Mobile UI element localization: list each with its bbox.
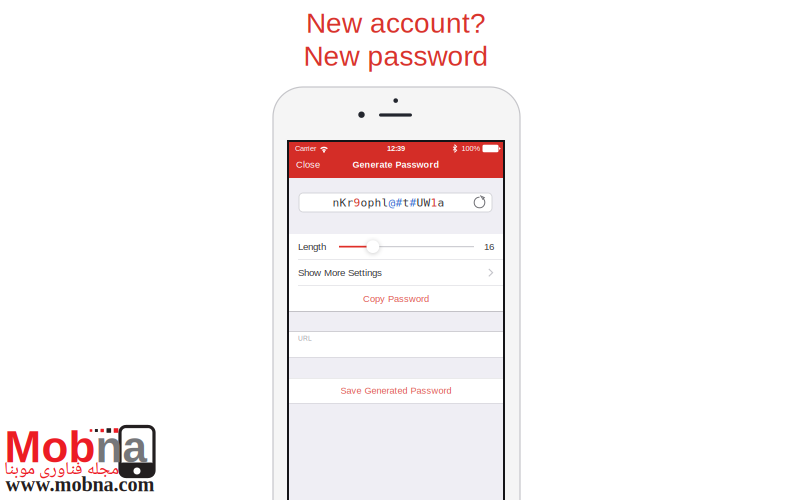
staticText: Show More Settings [298, 267, 382, 278]
staticText: مجله فناوری موبنا [3, 455, 118, 485]
staticText: Save Generated Password [340, 385, 451, 396]
staticText: New account? [306, 7, 486, 39]
staticText: www.mobna.com [5, 473, 154, 496]
button[interactable]: Close [289, 155, 327, 177]
staticText: ophl [360, 196, 388, 209]
button[interactable]: Copy Password [289, 286, 503, 311]
staticText: 9 [353, 196, 360, 209]
staticText: Mob [4, 422, 95, 472]
staticText: 100% [461, 144, 480, 153]
staticText: Length [298, 241, 326, 252]
staticText: Copy Password [363, 293, 429, 304]
staticText: Carrier [295, 144, 316, 153]
staticText: # [409, 196, 416, 209]
staticText: 1 [430, 196, 437, 209]
button[interactable]: Show More Settings [289, 260, 503, 285]
staticText: 16 [484, 241, 494, 252]
staticText: Close [296, 159, 320, 170]
staticText: t [402, 196, 409, 209]
staticText: a [437, 196, 444, 209]
staticText: @# [388, 196, 402, 209]
button[interactable]: Save Generated Password [289, 378, 503, 403]
staticText: 12:39 [387, 144, 405, 153]
staticText: UW [416, 196, 430, 209]
staticText: Generate Password [352, 159, 439, 169]
staticText: URL [298, 335, 312, 342]
staticText: na [95, 422, 146, 472]
staticText: nKr [332, 196, 353, 209]
staticText: New password [303, 40, 488, 72]
